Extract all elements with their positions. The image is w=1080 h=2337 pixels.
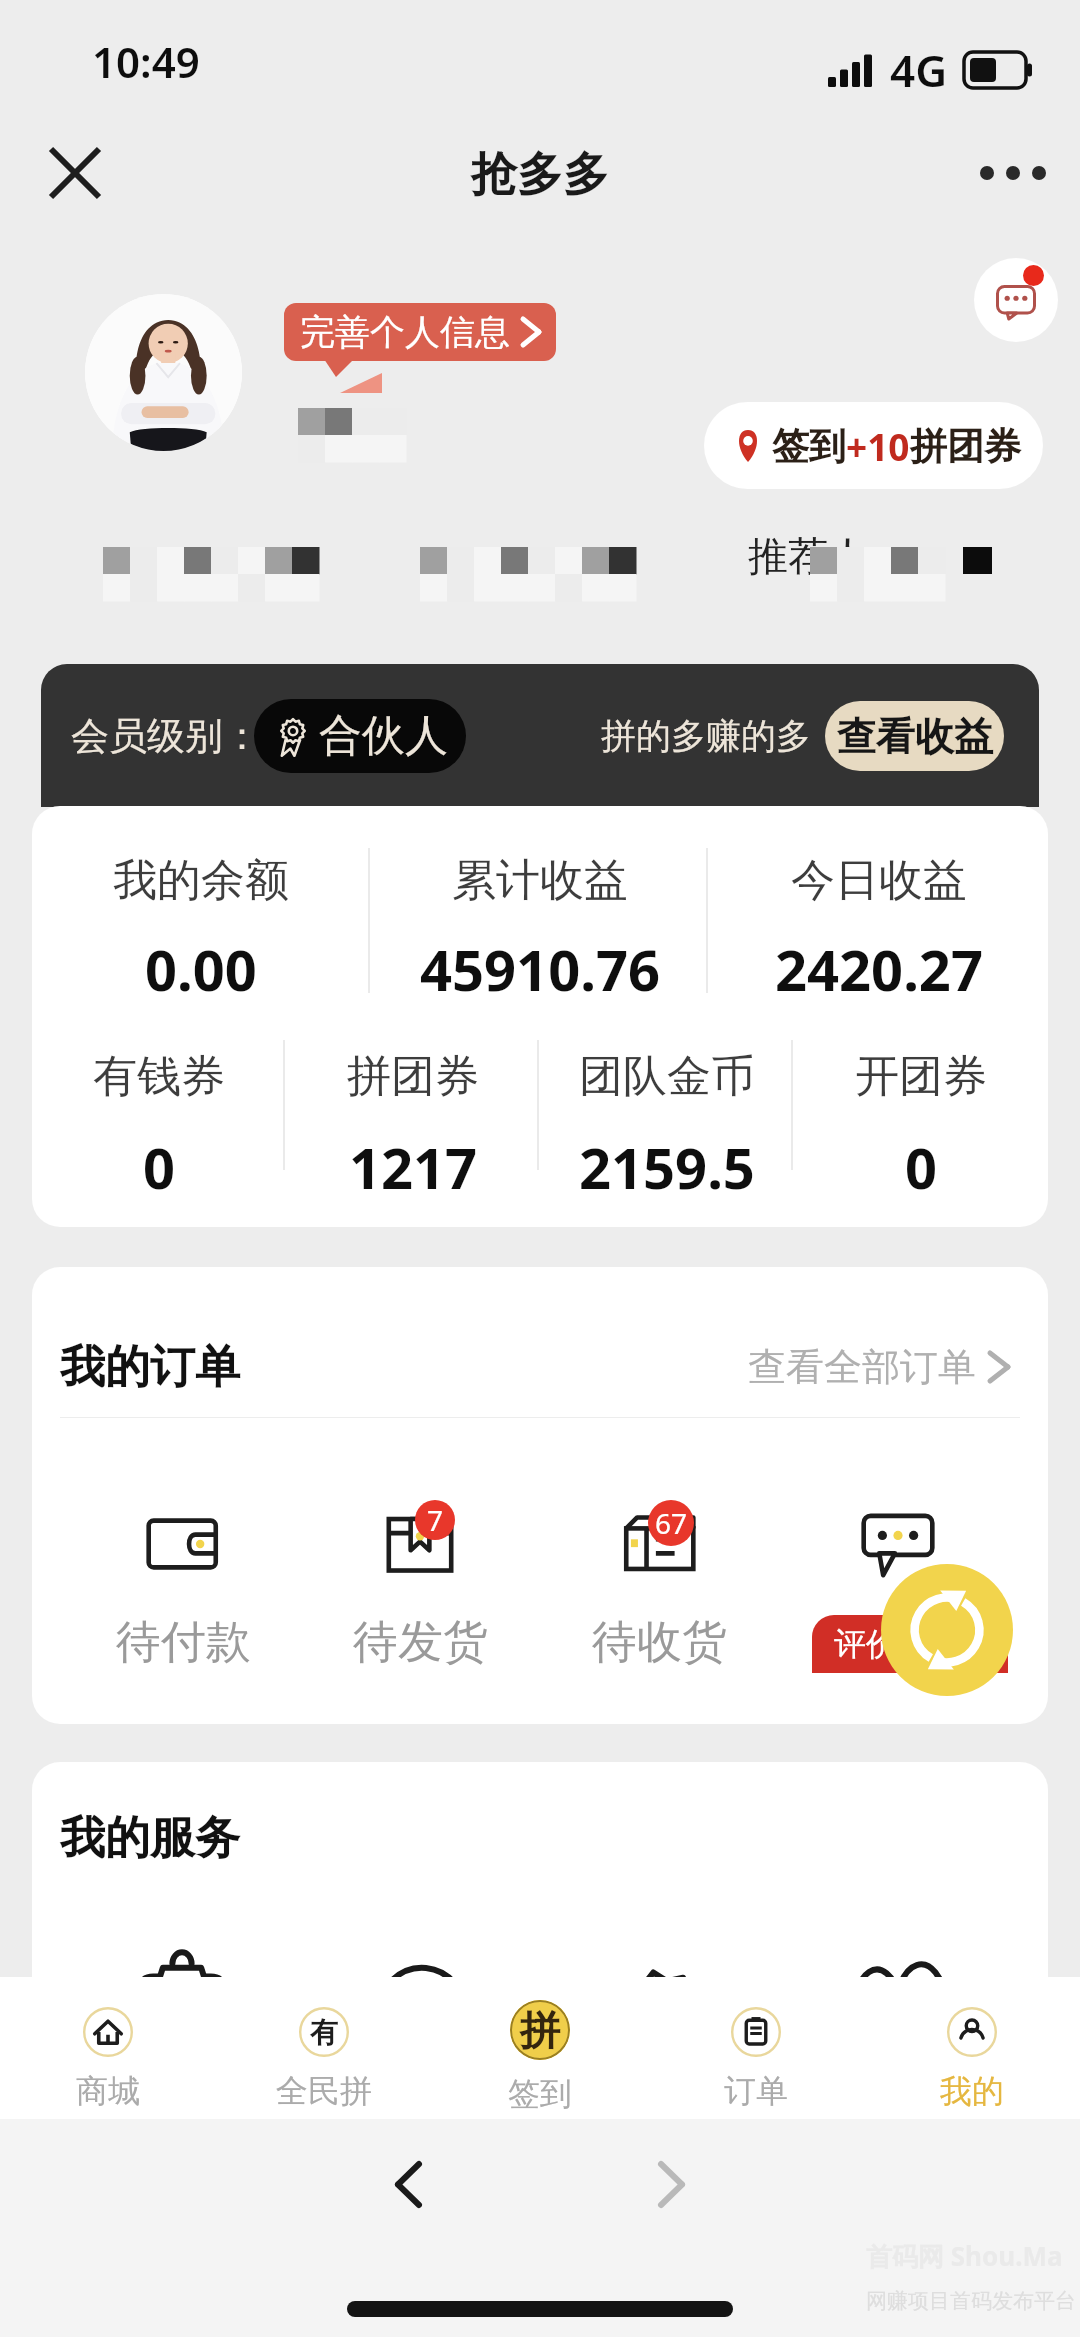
button[interactable]: 团队金币 [540,1016,794,1227]
staticText: 7 [427,1501,444,1539]
staticText: 拼团券 [347,1049,479,1104]
button[interactable]: Partners [830,1942,970,2072]
button[interactable]: 累计收益 [370,806,709,1016]
staticText: 查看收益 [837,712,993,761]
button[interactable]: 今日收益 [709,806,1048,1016]
staticText: 2420.27 [775,931,983,1007]
button[interactable]: 有 [216,1977,432,2119]
button[interactable]: Support [352,1942,492,2072]
staticText: 45910.76 [420,931,660,1007]
staticText: 我的 [940,2071,1004,2111]
staticText: 全民拼 [276,2071,372,2111]
staticText: 我的余额 [113,853,289,908]
staticText: 团队金币 [579,1049,755,1104]
staticText: 合伙人 [319,709,448,763]
staticText: 开团券 [855,1049,987,1104]
button[interactable]: More options [968,128,1058,218]
staticText: 待发货 [353,1614,488,1671]
staticText: 拼的多赚的多 [601,714,811,758]
staticText: 首码网 Shou.Ma [866,2238,1063,2274]
button[interactable]: Jobs [112,1942,252,2072]
button[interactable]: 查看收益 [825,701,1004,771]
button[interactable]: Forward [639,2152,703,2216]
staticText: 评价赚积分 [834,1624,994,1664]
staticText: 查看全部订单 [748,1343,976,1391]
staticText: 67 [655,1504,688,1542]
staticText: 我的订单 [60,1339,240,1396]
staticText: 我的服务 [60,1810,240,1867]
button[interactable]: Close [30,128,120,218]
staticText: 待付款 [116,1614,251,1671]
button[interactable]: 合伙人 [254,699,466,773]
staticText: 待收货 [592,1614,727,1671]
staticText: 完善个人信息 [300,310,510,354]
button[interactable]: 商城 [0,1977,216,2119]
staticText: 评价 [853,1614,943,1671]
staticText: 1217 [349,1129,478,1205]
staticText: 4G [890,40,948,100]
staticText: 拼团券 [910,423,1021,470]
staticText: 0.00 [145,931,257,1007]
button[interactable]: Back [376,2152,440,2216]
staticText: 抢多多 [471,146,609,204]
button[interactable]: 完善个人信息 [284,303,556,361]
button[interactable]: 我的余额 [32,806,370,1016]
button[interactable]: Avatar [85,294,242,451]
button[interactable]: 67 [569,1503,749,1671]
button[interactable]: Rewards [591,1942,731,2072]
staticText: 签到 [508,2074,572,2114]
staticText: 0 [905,1129,938,1205]
staticText: 今日收益 [791,853,967,908]
staticText: 拼 [520,2005,560,2055]
staticText: 订单 [724,2071,788,2111]
staticText: 推荐人 [748,531,868,581]
button[interactable]: 待付款 [93,1503,273,1671]
staticText: 2159.5 [579,1129,755,1205]
button[interactable]: 有钱券 [32,1016,286,1227]
staticText: 会员级别： [71,712,261,760]
button[interactable]: 签到 [704,402,1043,489]
staticText: 签到 [772,423,846,470]
button[interactable]: 评价 [808,1503,988,1671]
staticText: +10 [846,421,910,471]
button[interactable]: Refresh [881,1564,1013,1696]
button[interactable]: 订单 [648,1977,864,2119]
staticText: 0 [143,1129,176,1205]
button[interactable]: 评价赚积分 [812,1615,1008,1673]
button[interactable]: 7 [330,1503,510,1671]
staticText: 有钱券 [93,1049,225,1104]
button[interactable]: Customer service [974,258,1058,342]
staticText: 累计收益 [452,853,628,908]
staticText: 10:49 [92,33,200,90]
button[interactable]: 查看全部订单 [748,1343,1010,1391]
staticText: 商城 [76,2071,140,2111]
button[interactable]: 拼 [432,1977,648,2119]
button[interactable]: 开团券 [794,1016,1048,1227]
staticText: 有 [310,2015,338,2050]
button[interactable]: 拼团券 [286,1016,540,1227]
staticText: 网赚项目首码发布平台 [866,2288,1076,2314]
button[interactable]: 我的 [864,1977,1080,2119]
